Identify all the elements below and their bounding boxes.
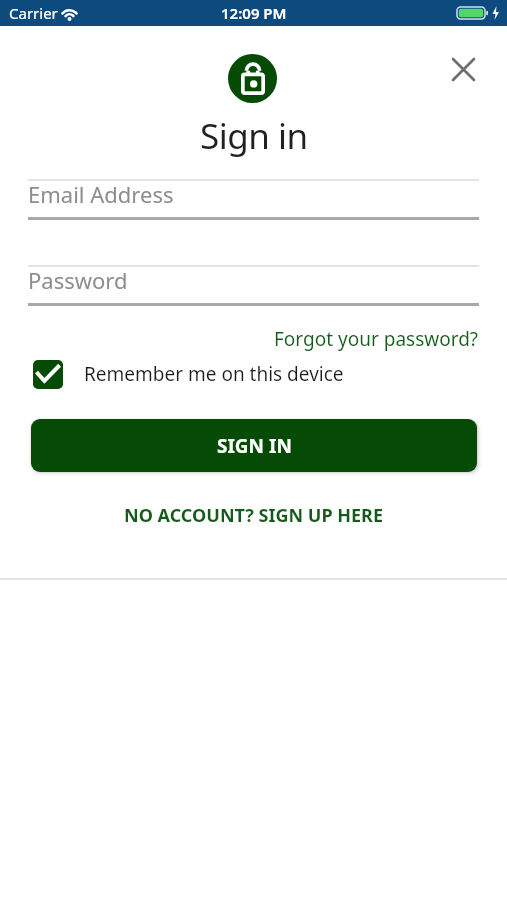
staticText: Carrier [9,3,58,23]
button[interactable]: NO ACCOUNT? SIGN UP HERE [0,500,507,530]
button[interactable]: Email Address [28,175,479,212]
button[interactable]: Remember me on this device [33,358,344,390]
staticText: Forgot your password? [274,326,479,352]
button[interactable]: SIGN IN [31,419,477,472]
staticText: 12:09 PM [221,3,287,23]
staticText: Remember me on this device [84,361,344,387]
button[interactable] [441,47,485,91]
button[interactable]: Forgot your password? [150,324,479,354]
staticText: SIGN IN [217,433,292,459]
staticText: Password [28,265,128,295]
staticText: Email Address [28,179,174,209]
staticText: Sign in [200,112,308,160]
button[interactable]: Password [28,261,479,298]
staticText: NO ACCOUNT? SIGN UP HERE [124,503,384,528]
